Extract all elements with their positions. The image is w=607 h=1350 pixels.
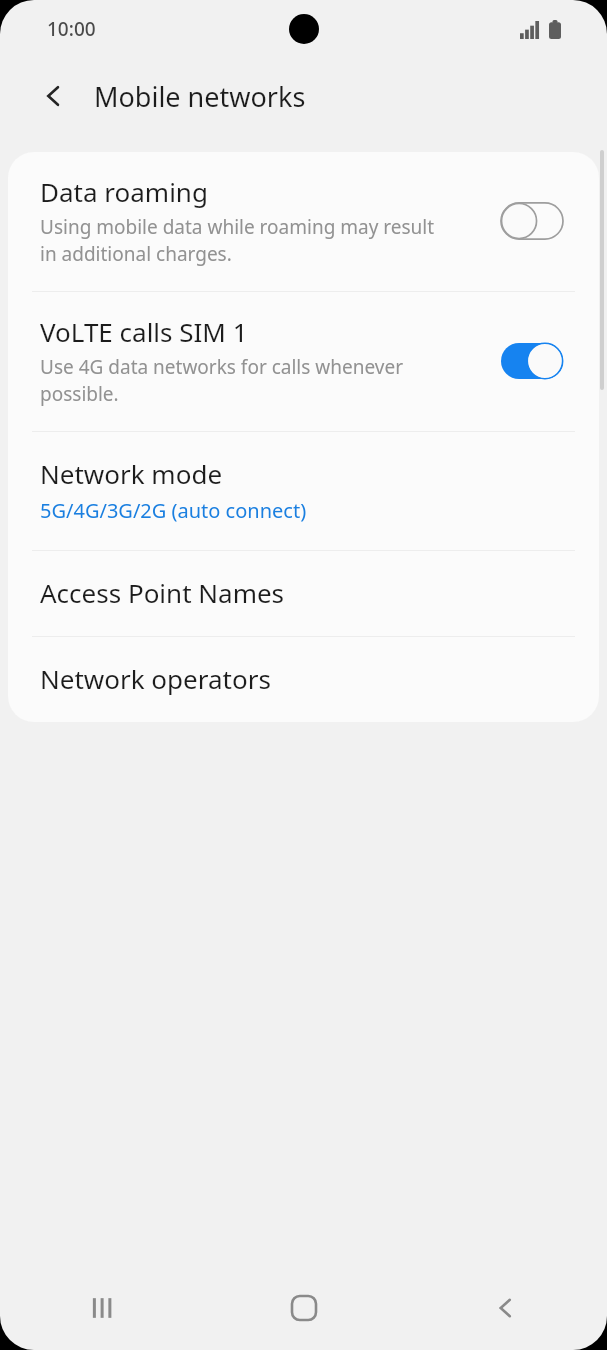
staticText: 5G/4G/3G/2G (auto connect) <box>40 497 307 524</box>
button[interactable]: Data roaming <box>8 152 599 291</box>
button[interactable]: Home <box>203 1266 405 1350</box>
staticText: Network mode <box>40 456 223 491</box>
staticText: VoLTE calls SIM 1 <box>40 314 248 349</box>
staticText: 10:00 <box>47 16 96 42</box>
button[interactable]: Access Point Names <box>8 551 599 636</box>
button[interactable]: Recent apps <box>0 1266 203 1350</box>
staticText: Data roaming <box>40 174 208 209</box>
button[interactable]: Network mode <box>8 432 599 550</box>
button[interactable]: Back <box>405 1266 607 1350</box>
staticText: Mobile networks <box>94 78 306 115</box>
staticText: Using mobile data while roaming may resu… <box>40 214 435 267</box>
staticText: Network operators <box>40 661 271 696</box>
button[interactable]: Toggle on <box>501 342 563 380</box>
button[interactable]: Network operators <box>8 637 599 722</box>
button[interactable]: Toggle off <box>501 202 563 240</box>
staticText: Access Point Names <box>40 575 285 610</box>
button[interactable]: Back <box>28 70 80 122</box>
button[interactable]: VoLTE calls SIM 1 <box>8 292 599 431</box>
staticText: Use 4G data networks for calls whenever … <box>40 354 403 407</box>
